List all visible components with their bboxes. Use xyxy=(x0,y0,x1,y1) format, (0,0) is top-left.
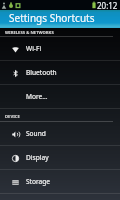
staticText: Sound xyxy=(26,129,46,138)
staticText: More... xyxy=(26,92,48,101)
button[interactable]: Wi-Fi xyxy=(0,37,120,60)
button[interactable]: Settings Shortcuts xyxy=(0,10,120,28)
staticText: Settings Shortcuts xyxy=(9,11,95,25)
button[interactable]: More... xyxy=(0,85,120,108)
staticText: Bluetooth xyxy=(26,68,57,77)
staticText: DEVICE xyxy=(5,114,20,120)
staticText: 20:12 xyxy=(97,0,118,10)
button[interactable]: Storage xyxy=(0,170,120,193)
staticText: Wi-Fi xyxy=(26,44,42,53)
button[interactable]: Sound xyxy=(0,122,120,145)
staticText: Display xyxy=(26,153,49,162)
button[interactable]: Display xyxy=(0,146,120,169)
staticText: Storage xyxy=(26,177,51,186)
button[interactable]: Bluetooth xyxy=(0,61,120,84)
staticText: WIRELESS & NETWORKS xyxy=(5,30,54,36)
